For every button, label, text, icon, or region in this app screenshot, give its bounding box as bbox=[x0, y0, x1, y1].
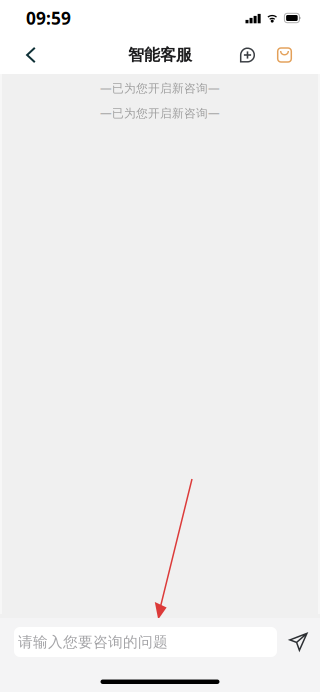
button[interactable]: Shopping bag bbox=[269, 36, 300, 74]
staticText: 智能客服 bbox=[128, 45, 192, 65]
staticText: —已为您开启新咨询— bbox=[100, 105, 220, 121]
button[interactable]: Back bbox=[10, 36, 52, 74]
button[interactable]: New conversation bbox=[226, 36, 269, 74]
staticText: 请输入您要咨询的问题 bbox=[18, 633, 168, 651]
button[interactable]: Send bbox=[277, 627, 320, 657]
staticText: —已为您开启新咨询— bbox=[100, 80, 220, 96]
button[interactable]: 请输入您要咨询的问题 bbox=[14, 627, 277, 657]
staticText: 09:59 bbox=[26, 6, 71, 30]
